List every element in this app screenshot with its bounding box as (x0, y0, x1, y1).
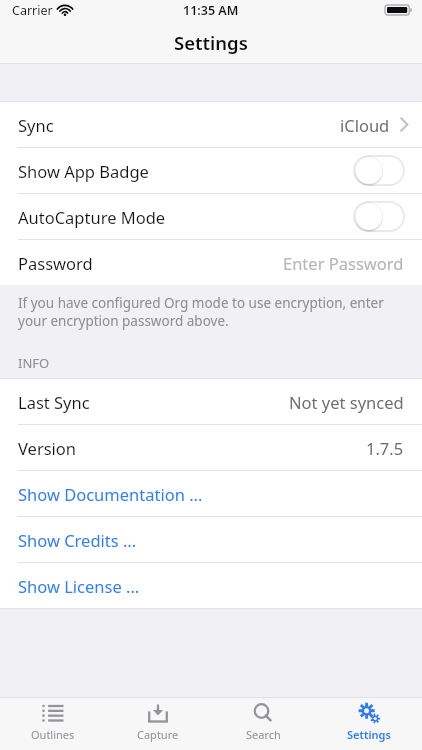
staticText: AutoCapture Mode (18, 206, 166, 228)
button[interactable]: Last Sync (0, 379, 422, 424)
button[interactable]: Capture (105, 698, 210, 750)
staticText: Last Sync (18, 391, 90, 413)
button[interactable]: Sync (0, 102, 422, 147)
staticText: Search (246, 727, 281, 742)
staticText: Show License ... (18, 575, 140, 597)
button[interactable]: Version (0, 425, 422, 470)
staticText: Capture (137, 727, 179, 742)
staticText: Carrier (12, 2, 53, 19)
button[interactable]: Outlines (0, 698, 105, 750)
button[interactable]: Search (210, 698, 316, 750)
button[interactable]: Show Credits ... (0, 517, 422, 562)
staticText: Show Documentation ... (18, 483, 203, 505)
staticText: Outlines (31, 727, 75, 742)
staticText: 11:35 AM (183, 2, 239, 19)
staticText: Sync (18, 114, 54, 136)
staticText: Show Credits ... (18, 529, 137, 551)
staticText: If you have configured Org mode to use e… (18, 294, 396, 330)
button[interactable]: Password (0, 240, 422, 285)
button[interactable]: AutoCapture Mode (353, 201, 405, 232)
staticText: Not yet synced (289, 391, 404, 413)
button[interactable]: Show App Badge (353, 155, 405, 186)
staticText: Enter Password (283, 252, 404, 274)
staticText: Settings (347, 727, 391, 742)
staticText: INFO (18, 354, 50, 372)
staticText: 1.7.5 (366, 437, 404, 459)
button[interactable]: Settings (316, 698, 422, 750)
button[interactable]: Show License ... (0, 563, 422, 608)
staticText: Password (18, 252, 93, 274)
staticText: iCloud (340, 114, 390, 136)
staticText: Settings (174, 30, 248, 55)
staticText: Show App Badge (18, 160, 149, 182)
button[interactable]: Show Documentation ... (0, 471, 422, 516)
staticText: Version (18, 437, 77, 459)
